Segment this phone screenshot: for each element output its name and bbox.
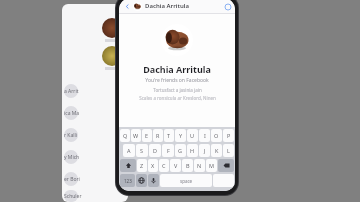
staticText: ica Ma bbox=[64, 110, 80, 117]
staticText: 123 bbox=[124, 178, 132, 184]
button[interactable]: H bbox=[187, 144, 198, 157]
button[interactable]: F bbox=[162, 144, 174, 157]
staticText: Tortusfact a jasinia jain bbox=[153, 87, 202, 93]
button[interactable]: Schuler bbox=[62, 190, 128, 202]
staticText: F bbox=[167, 147, 170, 154]
staticText: B bbox=[186, 162, 190, 169]
staticText: V bbox=[174, 162, 178, 169]
staticText: C bbox=[162, 162, 166, 169]
staticText: A bbox=[127, 147, 131, 154]
staticText: Y bbox=[179, 132, 183, 139]
staticText: Dachia Arritula bbox=[143, 63, 211, 75]
button[interactable]: P bbox=[223, 129, 234, 142]
button[interactable]: Z bbox=[137, 159, 147, 172]
button[interactable]: ica Ma bbox=[62, 102, 128, 124]
button[interactable]: L bbox=[223, 144, 234, 157]
staticText: D bbox=[153, 147, 158, 154]
staticText: X bbox=[151, 162, 155, 169]
button[interactable]: U bbox=[187, 129, 198, 142]
button[interactable]: space bbox=[160, 174, 212, 187]
staticText: er Bori bbox=[64, 176, 80, 183]
button[interactable]: N bbox=[194, 159, 205, 172]
staticText: U bbox=[190, 132, 195, 139]
button[interactable]: S bbox=[136, 144, 148, 157]
button[interactable]: Q bbox=[120, 129, 130, 142]
button[interactable]: D bbox=[149, 144, 161, 157]
button[interactable]: X bbox=[148, 159, 158, 172]
button[interactable]: Dictate bbox=[148, 174, 159, 187]
staticText: H bbox=[190, 147, 195, 154]
staticText: I bbox=[204, 132, 206, 139]
button[interactable]: O bbox=[211, 129, 222, 142]
staticText: Z bbox=[140, 162, 144, 169]
button[interactable]: M bbox=[206, 159, 217, 172]
staticText: S bbox=[140, 147, 144, 154]
button[interactable]: Info bbox=[223, 2, 232, 11]
button[interactable]: J bbox=[199, 144, 210, 157]
staticText: space bbox=[180, 178, 193, 184]
button[interactable]: Change language bbox=[136, 174, 147, 187]
staticText: L bbox=[227, 147, 230, 154]
staticText: P bbox=[227, 132, 231, 139]
button[interactable]: Backspace bbox=[218, 159, 234, 172]
staticText: J bbox=[204, 147, 206, 154]
button[interactable]: T bbox=[164, 129, 174, 142]
button[interactable]: K bbox=[211, 144, 222, 157]
button[interactable]: Y bbox=[175, 129, 186, 142]
staticText: K bbox=[215, 147, 219, 154]
staticText: Dachia Arritula bbox=[145, 2, 189, 10]
button[interactable]: er Bori bbox=[62, 168, 128, 190]
staticText: Scales a ronsicula ar Kreslord, Ninen bbox=[139, 95, 216, 101]
button[interactable]: Back bbox=[122, 1, 132, 11]
button[interactable]: E bbox=[142, 129, 152, 142]
staticText: M bbox=[209, 162, 214, 169]
button[interactable]: R bbox=[153, 129, 163, 142]
staticText: y Mich bbox=[64, 154, 80, 161]
staticText: You're friends on Facebook bbox=[145, 77, 209, 84]
button[interactable]: I bbox=[199, 129, 210, 142]
button[interactable]: C bbox=[159, 159, 169, 172]
staticText: G bbox=[178, 147, 183, 154]
staticText: E bbox=[145, 132, 149, 139]
button[interactable]: A bbox=[123, 144, 135, 157]
button[interactable]: B bbox=[182, 159, 193, 172]
button[interactable]: a Arrit bbox=[62, 80, 128, 102]
staticText: N bbox=[197, 162, 202, 169]
button[interactable]: W bbox=[131, 129, 141, 142]
staticText: T bbox=[167, 132, 171, 139]
staticText: Schuler bbox=[64, 193, 82, 200]
staticText: a Arrit bbox=[64, 88, 79, 95]
staticText: R bbox=[156, 132, 160, 139]
staticText: Q bbox=[123, 132, 128, 139]
button[interactable] bbox=[213, 174, 234, 187]
button[interactable]: 123 bbox=[120, 174, 135, 187]
button[interactable]: y Mich bbox=[62, 146, 128, 168]
button[interactable]: V bbox=[170, 159, 181, 172]
staticText: O bbox=[214, 132, 219, 139]
button[interactable]: r Kalli bbox=[62, 124, 128, 146]
staticText: W bbox=[133, 132, 139, 139]
button[interactable]: Shift bbox=[120, 159, 136, 172]
button[interactable]: G bbox=[175, 144, 186, 157]
staticText: r Kalli bbox=[64, 132, 78, 139]
